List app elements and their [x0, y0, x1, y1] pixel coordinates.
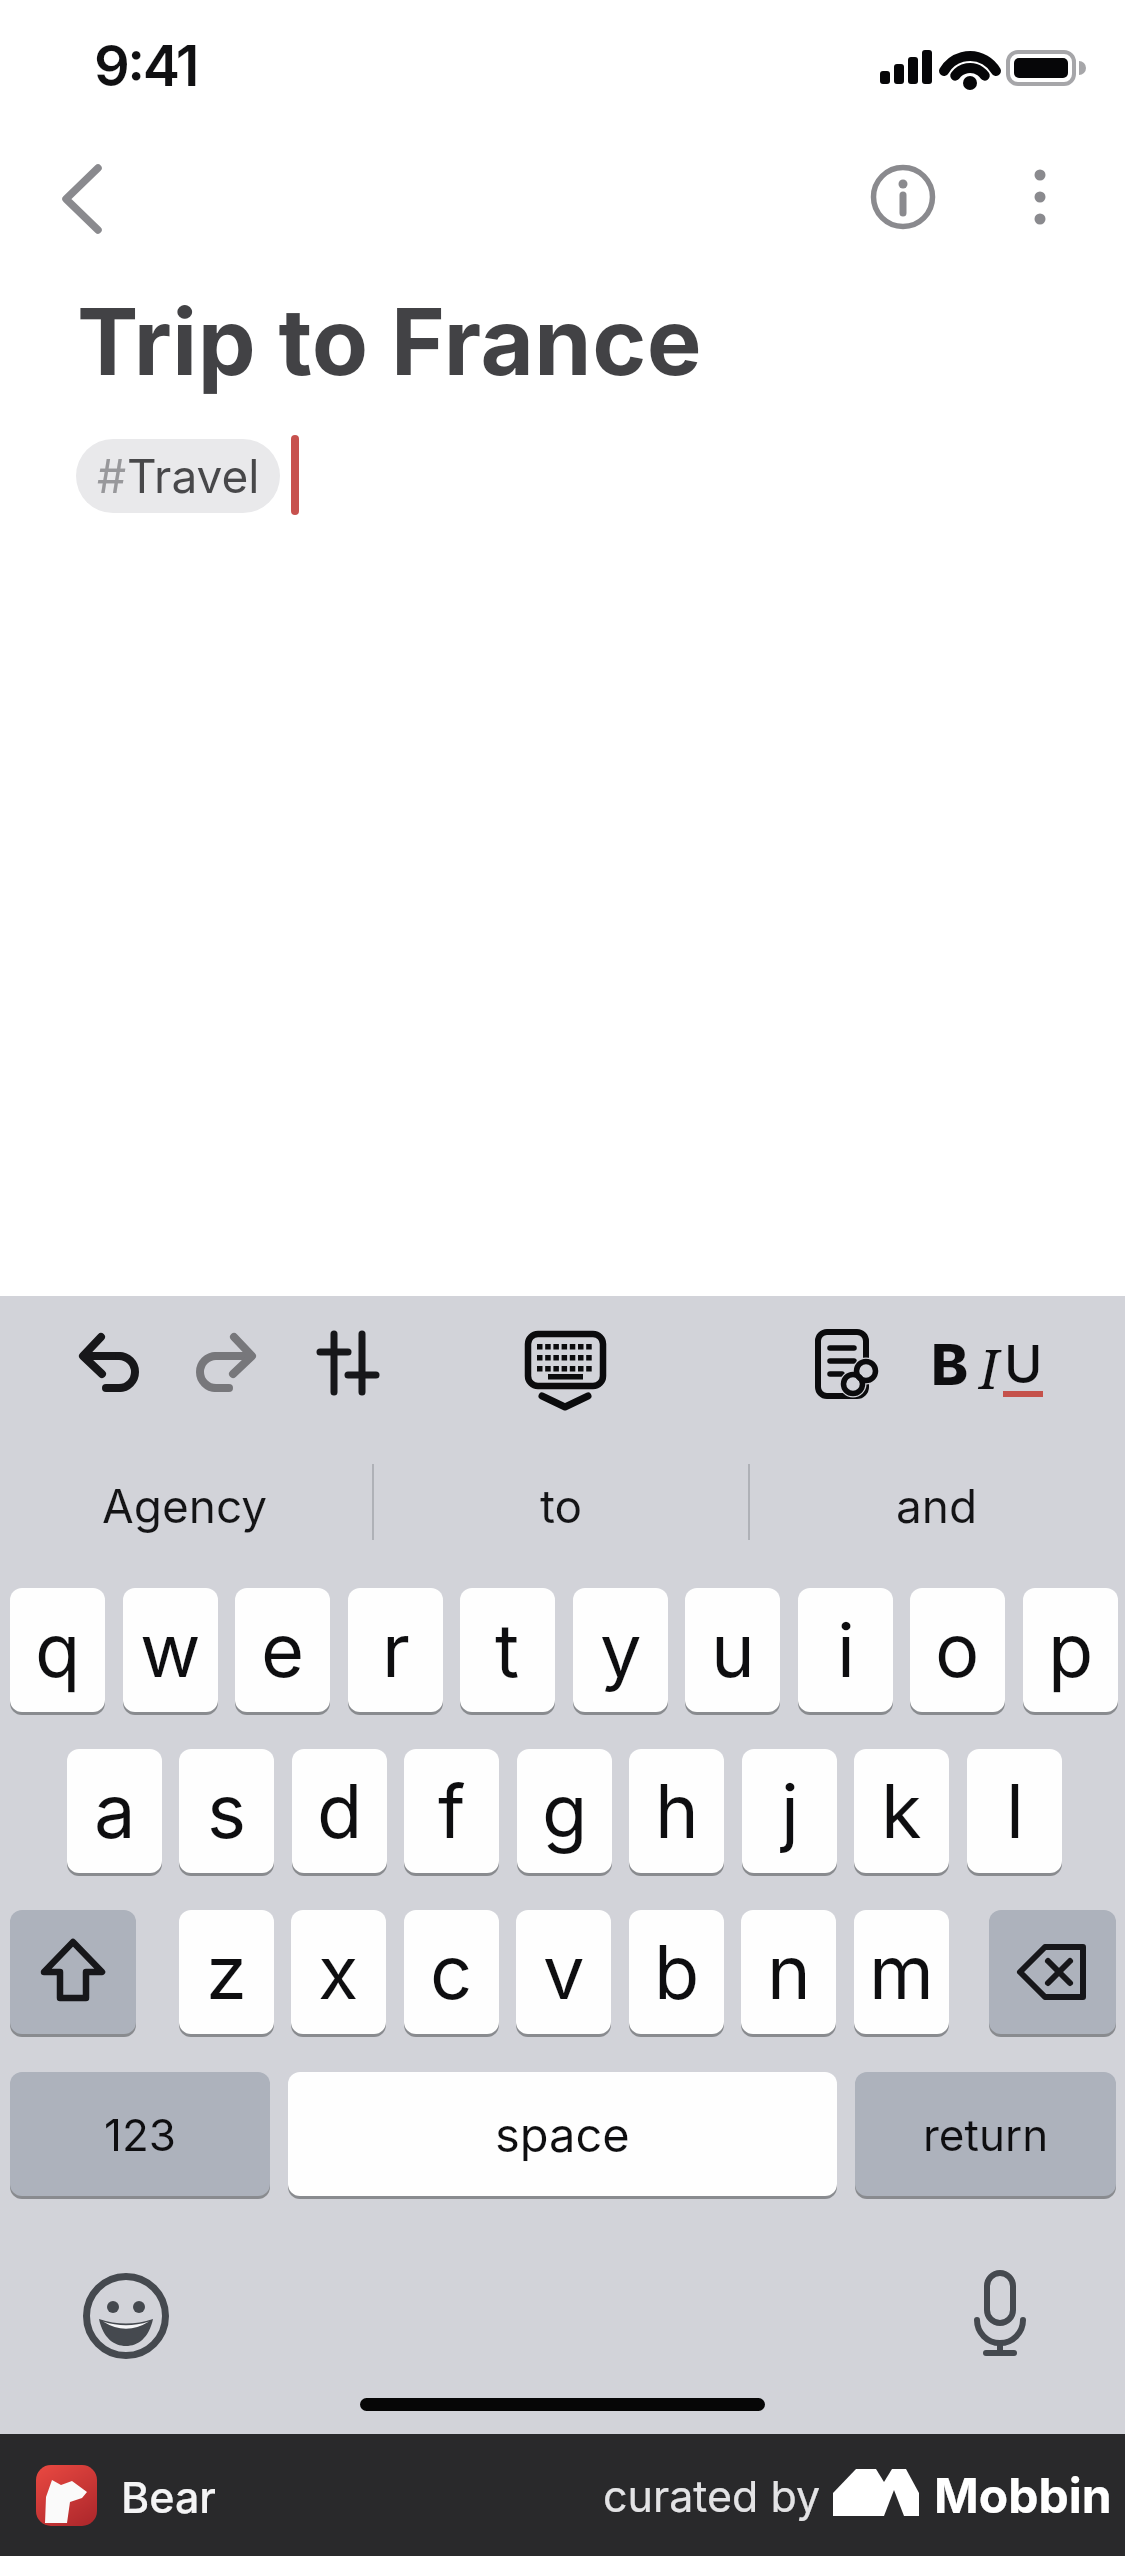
button[interactable]: [48, 158, 120, 240]
button[interactable]: z: [179, 1910, 274, 2034]
button[interactable]: [10, 1910, 136, 2034]
button[interactable]: c: [404, 1910, 499, 2034]
staticText: B: [931, 1331, 969, 1399]
button[interactable]: a: [67, 1749, 162, 1873]
staticText: Trip to France: [77, 286, 703, 397]
button[interactable]: t: [460, 1588, 555, 1712]
staticText: Mobbin: [934, 2466, 1112, 2524]
staticText: y: [600, 1605, 642, 1695]
button[interactable]: and: [752, 1450, 1122, 1562]
staticText: s: [207, 1766, 247, 1856]
button[interactable]: Agency: [0, 1450, 370, 1562]
button[interactable]: [1010, 160, 1070, 234]
button[interactable]: k: [854, 1749, 949, 1873]
button[interactable]: d: [292, 1749, 387, 1873]
staticText: I: [979, 1331, 999, 1405]
button[interactable]: [866, 160, 940, 234]
button[interactable]: b: [629, 1910, 724, 2034]
button[interactable]: [84, 2276, 172, 2364]
button[interactable]: v: [516, 1910, 611, 2034]
staticText: m: [869, 1927, 934, 2017]
button[interactable]: [190, 1320, 265, 1395]
staticText: Bear: [121, 2471, 216, 2523]
button[interactable]: [989, 1910, 1116, 2034]
staticText: curated by: [603, 2470, 821, 2522]
staticText: l: [1006, 1766, 1024, 1856]
staticText: k: [881, 1766, 922, 1856]
button[interactable]: return: [855, 2072, 1116, 2196]
button[interactable]: #: [76, 439, 280, 513]
staticText: j: [781, 1766, 799, 1856]
button[interactable]: n: [741, 1910, 836, 2034]
button[interactable]: q: [10, 1588, 105, 1712]
staticText: h: [655, 1766, 699, 1856]
staticText: o: [935, 1605, 980, 1695]
button[interactable]: i: [798, 1588, 893, 1712]
staticText: t: [495, 1605, 520, 1695]
staticText: z: [206, 1927, 247, 2017]
button[interactable]: [313, 1322, 383, 1400]
staticText: 9:41: [94, 32, 197, 100]
button[interactable]: [955, 2265, 1045, 2365]
staticText: b: [654, 1927, 700, 2017]
button[interactable]: e: [235, 1588, 330, 1712]
staticText: to: [540, 1478, 583, 1534]
button[interactable]: u: [685, 1588, 780, 1712]
staticText: v: [543, 1927, 585, 2017]
button[interactable]: s: [179, 1749, 274, 1873]
button[interactable]: j: [742, 1749, 837, 1873]
staticText: n: [767, 1927, 811, 2017]
staticText: Travel: [127, 448, 260, 504]
button[interactable]: p: [1023, 1588, 1118, 1712]
button[interactable]: w: [123, 1588, 218, 1712]
staticText: 123: [104, 2108, 176, 2161]
button[interactable]: o: [910, 1588, 1005, 1712]
staticText: x: [318, 1927, 359, 2017]
button[interactable]: l: [967, 1749, 1062, 1873]
staticText: i: [837, 1605, 855, 1695]
button[interactable]: r: [348, 1588, 443, 1712]
staticText: r: [382, 1605, 410, 1695]
button[interactable]: [36, 2465, 97, 2526]
button[interactable]: [520, 1324, 610, 1412]
staticText: d: [317, 1766, 363, 1856]
button[interactable]: [922, 1326, 1047, 1404]
button[interactable]: y: [573, 1588, 668, 1712]
staticText: #: [97, 448, 127, 504]
staticText: f: [438, 1766, 466, 1856]
button[interactable]: space: [288, 2072, 837, 2196]
button[interactable]: [70, 1320, 145, 1395]
button[interactable]: to: [376, 1450, 746, 1562]
staticText: a: [94, 1766, 136, 1856]
button[interactable]: g: [517, 1749, 612, 1873]
staticText: w: [140, 1605, 201, 1695]
button[interactable]: [808, 1322, 888, 1406]
button[interactable]: 123: [10, 2072, 270, 2196]
staticText: p: [1048, 1605, 1094, 1695]
staticText: e: [261, 1605, 305, 1695]
staticText: space: [495, 2106, 630, 2163]
button[interactable]: x: [291, 1910, 386, 2034]
staticText: Agency: [102, 1478, 268, 1534]
button[interactable]: f: [404, 1749, 499, 1873]
staticText: u: [711, 1605, 755, 1695]
button[interactable]: h: [629, 1749, 724, 1873]
button[interactable]: m: [854, 1910, 949, 2034]
staticText: return: [923, 2108, 1049, 2161]
staticText: U: [1004, 1333, 1043, 1396]
staticText: q: [35, 1605, 81, 1695]
staticText: c: [430, 1927, 473, 2017]
staticText: g: [542, 1766, 588, 1856]
staticText: and: [896, 1478, 978, 1534]
